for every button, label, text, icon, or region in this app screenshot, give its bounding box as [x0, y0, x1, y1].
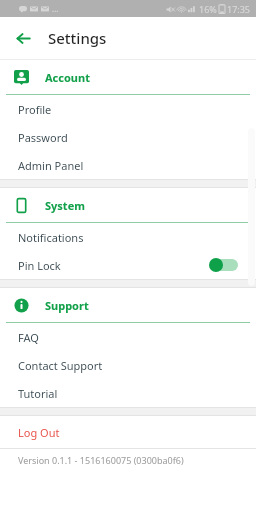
button[interactable]: Contact Support	[0, 351, 256, 379]
staticText: Log Out	[18, 425, 60, 440]
staticText: 16%	[199, 3, 217, 15]
button[interactable]: Notifications	[0, 223, 256, 251]
staticText: 17:35	[227, 3, 251, 15]
staticText: Profile	[18, 102, 52, 117]
staticText: Version 0.1.1 - 1516160075 (0300ba0f6)	[18, 454, 184, 466]
staticText: Contact Support	[18, 358, 103, 373]
staticText: Password	[18, 130, 68, 145]
button[interactable]: Tutorial	[0, 379, 256, 407]
staticText: Tutorial	[18, 386, 58, 401]
staticText: Settings	[48, 28, 107, 48]
button[interactable]: Password	[0, 123, 256, 151]
button[interactable]: Back	[8, 23, 38, 53]
button[interactable]: Pin Lock	[0, 251, 256, 279]
button[interactable]: Profile	[0, 95, 256, 123]
button[interactable]: Admin Panel	[0, 151, 256, 179]
button[interactable]: FAQ	[0, 323, 256, 351]
staticText: Account	[45, 70, 90, 85]
staticText: System	[45, 198, 85, 213]
button[interactable]: Log Out	[0, 416, 256, 448]
staticText: ...	[52, 3, 59, 14]
staticText: Notifications	[18, 230, 84, 245]
staticText: Pin Lock	[18, 258, 61, 273]
staticText: Admin Panel	[18, 158, 84, 173]
staticText: FAQ	[18, 330, 39, 345]
button[interactable]: Pin Lock toggle	[208, 256, 242, 274]
staticText: Support	[45, 298, 89, 313]
